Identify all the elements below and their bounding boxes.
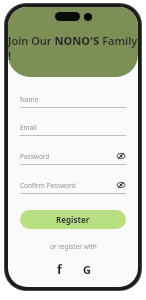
staticText: f <box>57 261 62 277</box>
button[interactable]: Password <box>20 151 126 165</box>
button[interactable]: Show password <box>116 151 126 161</box>
button[interactable]: Show password <box>116 180 126 190</box>
staticText: Confirm Password <box>20 181 116 190</box>
button[interactable]: Confirm Password <box>20 180 126 194</box>
button[interactable]: Sign up with Google <box>79 261 95 277</box>
staticText: Email <box>20 123 126 132</box>
staticText: Password <box>20 152 116 161</box>
staticText: or register with <box>50 242 97 251</box>
button[interactable]: Register <box>20 210 126 229</box>
button[interactable]: Email <box>20 123 126 136</box>
staticText: Register <box>56 214 90 225</box>
staticText: Name <box>20 95 126 104</box>
staticText: G <box>83 262 91 277</box>
staticText: Join Our NONO'S Family ! <box>8 33 138 63</box>
button[interactable]: Name <box>20 95 126 108</box>
button[interactable]: Sign up with Facebook <box>51 261 67 277</box>
